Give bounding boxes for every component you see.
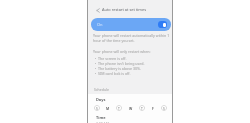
staticText: Your phone will only restart when: xyxy=(93,49,151,54)
staticText: On xyxy=(97,22,103,27)
staticText: T xyxy=(141,106,143,110)
staticText: The battery is above 30%. xyxy=(98,66,142,71)
staticText: The phone isn't being used. xyxy=(98,61,145,66)
button[interactable]: M xyxy=(105,105,111,111)
staticText: SIM card lock is off. xyxy=(98,71,131,76)
button[interactable]: T xyxy=(139,105,145,111)
button[interactable]: F xyxy=(150,105,156,111)
staticText: The screen is off. xyxy=(98,56,127,61)
staticText: S xyxy=(96,106,98,110)
button[interactable]: S xyxy=(161,105,167,111)
staticText: • xyxy=(95,71,97,76)
staticText: W xyxy=(129,106,133,110)
staticText: S xyxy=(163,106,165,110)
staticText: 3:00 AM xyxy=(96,121,109,123)
staticText: Time xyxy=(96,115,106,120)
staticText: M xyxy=(106,106,110,110)
staticText: F xyxy=(152,106,154,110)
button[interactable]: S xyxy=(94,105,100,111)
button[interactable]: W xyxy=(128,105,134,111)
staticText: Your phone will restart automatically wi… xyxy=(93,33,170,43)
staticText: T xyxy=(118,106,120,110)
staticText: • xyxy=(95,61,97,66)
button[interactable]: On xyxy=(91,18,171,31)
staticText: • xyxy=(95,56,97,61)
button[interactable]: T xyxy=(116,105,122,111)
staticText: Schedule xyxy=(94,87,109,92)
staticText: Days xyxy=(96,97,106,102)
staticText: Auto restart at set times xyxy=(102,7,147,12)
button[interactable]: Back xyxy=(93,6,102,15)
staticText: • xyxy=(95,66,97,71)
